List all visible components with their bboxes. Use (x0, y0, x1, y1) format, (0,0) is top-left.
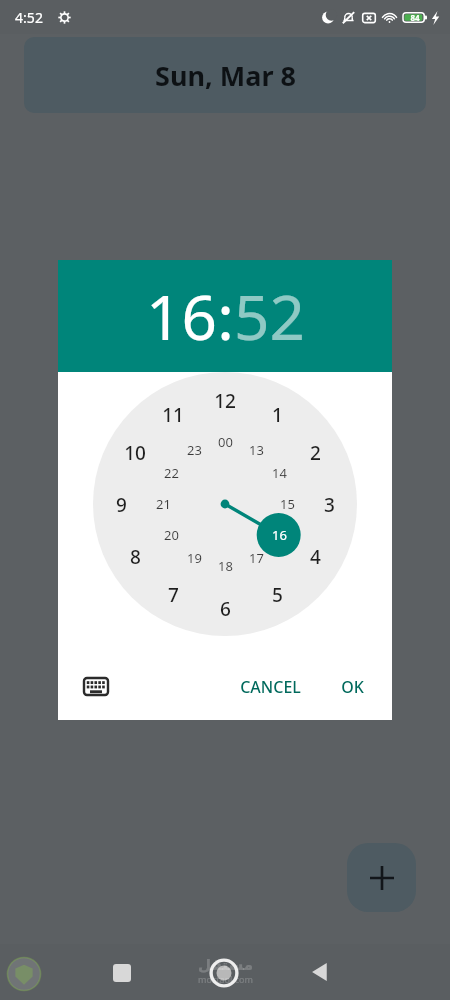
button[interactable]: Back (308, 960, 332, 984)
staticText: : (217, 274, 234, 358)
staticText: 9 (116, 492, 127, 516)
staticText: OK (341, 676, 364, 698)
staticText: CANCEL (240, 676, 301, 698)
staticText: 19 (187, 549, 202, 567)
staticText: 14 (272, 464, 287, 482)
staticText: 4 (310, 544, 321, 568)
staticText: 1 (272, 402, 283, 426)
staticText: 18 (218, 557, 233, 575)
staticText: 16 (272, 526, 287, 544)
staticText: 22 (164, 464, 179, 482)
staticText: 3 (324, 492, 335, 516)
staticText: 13 (249, 441, 264, 459)
staticText: 17 (249, 549, 264, 567)
button[interactable]: Switch to keyboard input (74, 664, 118, 708)
staticText: 8 (130, 544, 141, 568)
staticText: 4:52 (15, 8, 43, 27)
button[interactable]: OK (333, 670, 372, 704)
staticText: 10 (124, 440, 146, 464)
staticText: 12 (214, 388, 236, 412)
button[interactable]: 16 (146, 274, 217, 358)
button[interactable]: Home (209, 958, 239, 988)
button[interactable]: 12 (93, 372, 357, 636)
staticText: mostaql.com (198, 973, 253, 985)
staticText: 11 (162, 402, 184, 426)
button[interactable]: Sun, Mar 8 (24, 37, 426, 113)
staticText: 2 (310, 440, 321, 464)
staticText: 5 (272, 582, 283, 606)
staticText: 20 (164, 526, 179, 544)
staticText: مستقل (198, 956, 253, 973)
staticText: 23 (187, 441, 202, 459)
staticText: 15 (280, 495, 295, 513)
button[interactable]: 52 (234, 274, 305, 358)
button[interactable]: CANCEL (232, 670, 309, 704)
staticText: 7 (168, 582, 179, 606)
staticText: 00 (218, 433, 233, 451)
staticText: 6 (220, 596, 231, 620)
staticText: Sun, Mar 8 (155, 57, 296, 94)
button[interactable]: Add (347, 843, 416, 912)
button[interactable]: Recent apps (111, 962, 133, 984)
staticText: 21 (156, 495, 171, 513)
staticText: 84 (410, 12, 420, 23)
